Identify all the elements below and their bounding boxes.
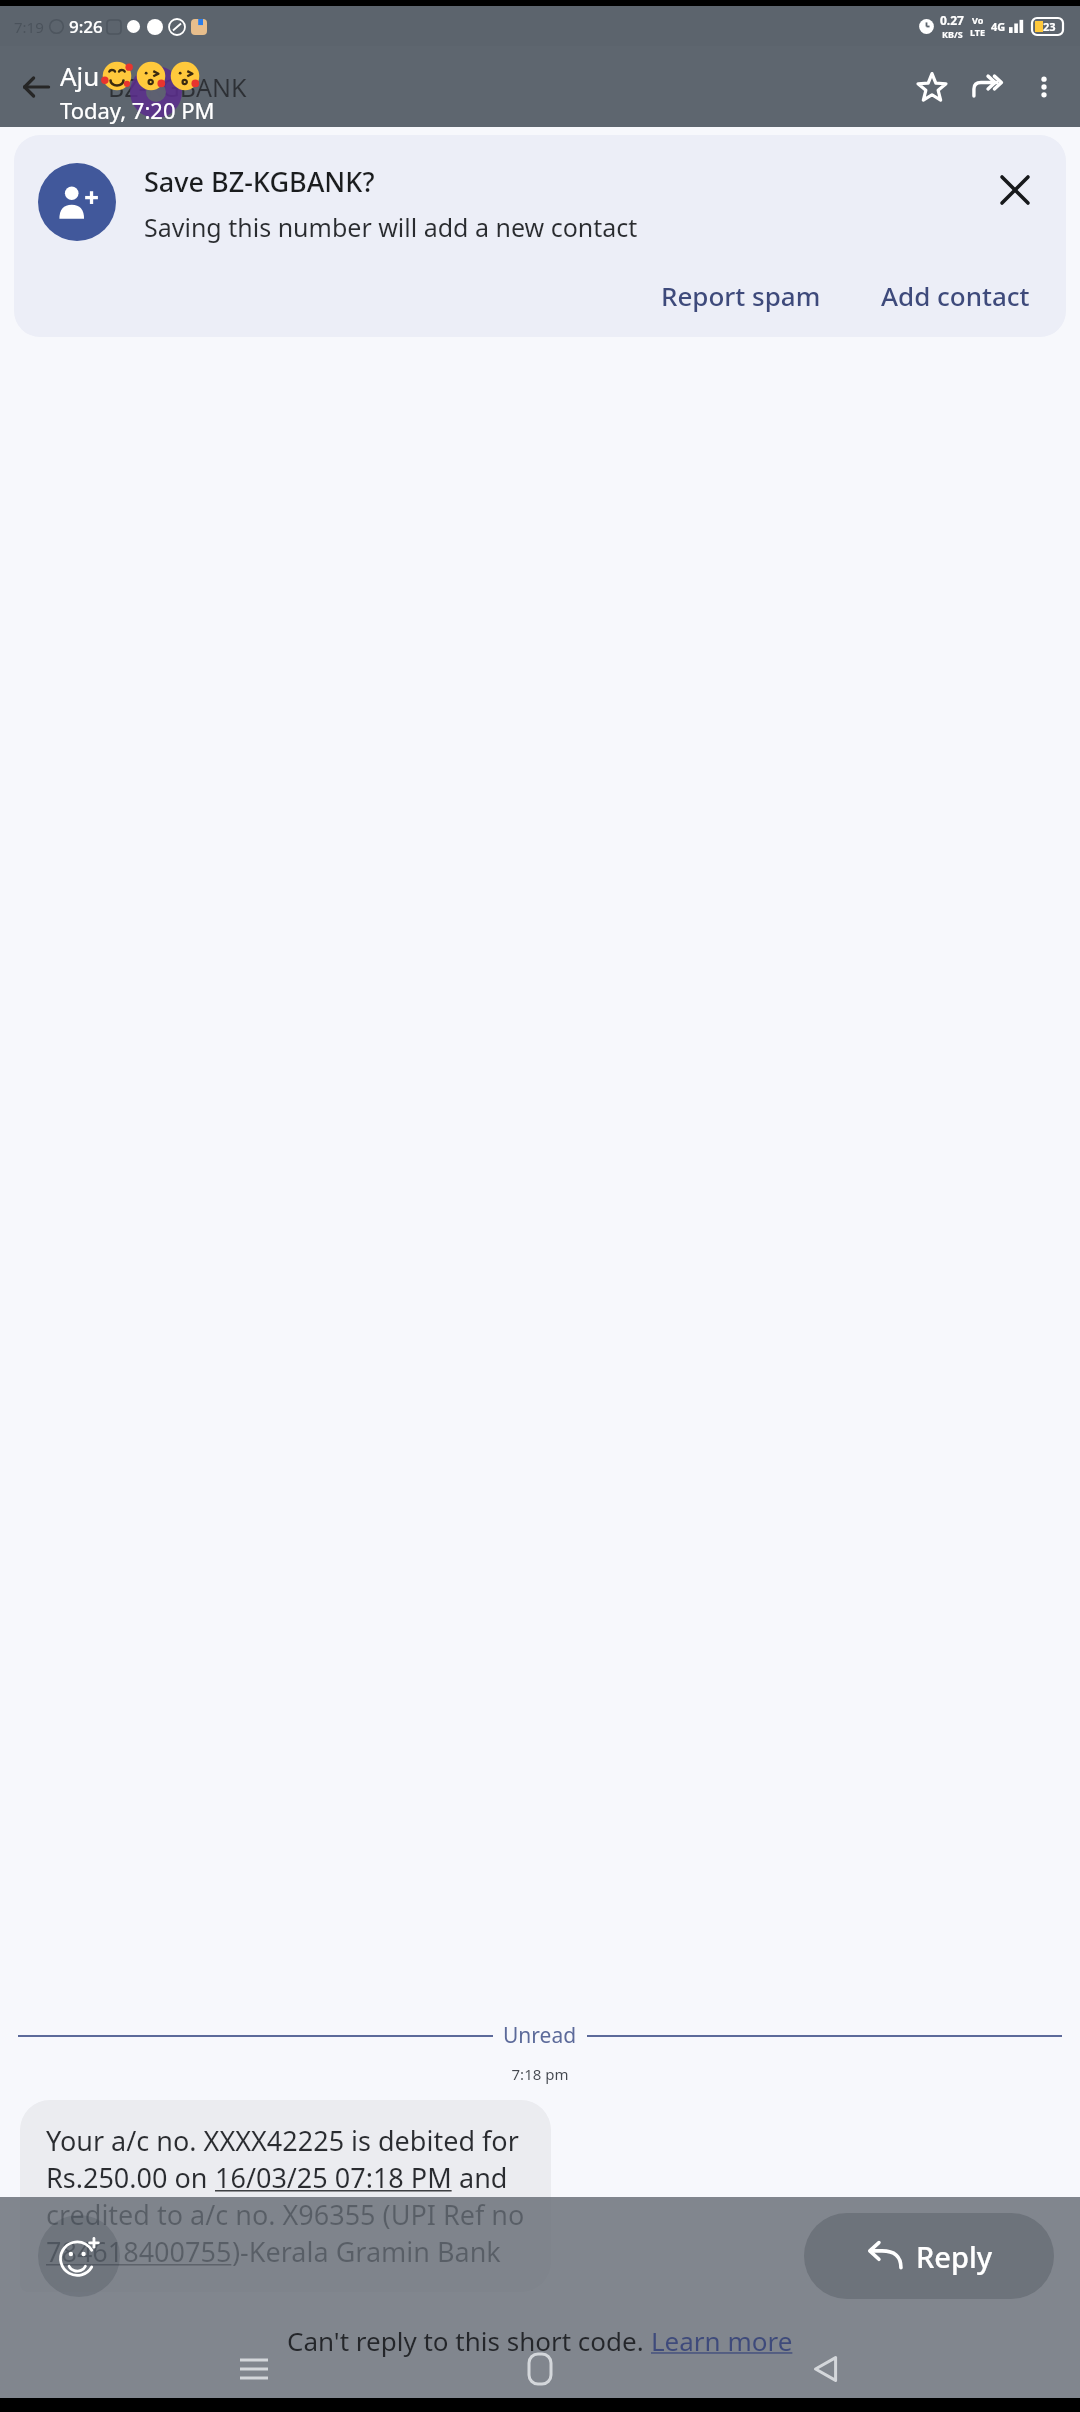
staticText: Unread bbox=[503, 2021, 577, 2050]
staticText: 16/03/25 07:18 PM bbox=[215, 2159, 452, 2196]
button[interactable]: Star bbox=[904, 59, 960, 115]
staticText: LTE bbox=[970, 26, 986, 38]
staticText: KB/S bbox=[942, 28, 963, 40]
staticText: Reply bbox=[916, 2237, 993, 2276]
button[interactable]: Learn more bbox=[651, 2323, 793, 2358]
button[interactable]: Recent apps bbox=[222, 2337, 286, 2401]
button[interactable]: Your a/c no. XXXX42225 is debited for bbox=[20, 2100, 551, 2292]
staticText: Saving this number will add a new contac… bbox=[144, 210, 638, 244]
staticText: 0.27 bbox=[940, 12, 964, 28]
staticText: Vo bbox=[972, 14, 984, 26]
button[interactable]: Save BZ-KGBANK? bbox=[14, 135, 1066, 337]
button[interactable]: Add contact bbox=[869, 272, 1042, 319]
button[interactable]: More options bbox=[1016, 59, 1072, 115]
staticText: Rs.250.00 on bbox=[46, 2159, 215, 2196]
staticText: BZ-KGBANK bbox=[108, 70, 247, 104]
staticText: 784618400755 bbox=[46, 2233, 232, 2270]
staticText: Your a/c no. XXXX42225 is debited for bbox=[46, 2122, 519, 2159]
staticText: 9:26 bbox=[69, 15, 103, 38]
button[interactable]: Add emoji reaction bbox=[38, 2215, 120, 2297]
button[interactable]: Dismiss bbox=[988, 163, 1042, 217]
staticText: credited to a/c no. X96355 (UPI Ref no bbox=[46, 2196, 525, 2233]
staticText: 7:19 bbox=[14, 17, 44, 37]
button[interactable]: Forward bbox=[960, 59, 1016, 115]
staticText: 23 bbox=[1043, 19, 1056, 34]
button[interactable]: Reply bbox=[804, 2213, 1054, 2299]
staticText: 4G bbox=[991, 19, 1006, 34]
staticText: Can't reply to this short code. bbox=[287, 2323, 651, 2358]
staticText: Aju bbox=[60, 58, 100, 93]
staticText: )-Kerala Gramin Bank bbox=[232, 2233, 501, 2270]
button[interactable]: Back bbox=[10, 61, 62, 113]
staticText: Add contact bbox=[881, 278, 1030, 313]
staticText: Learn more bbox=[651, 2323, 793, 2358]
staticText: Save BZ-KGBANK? bbox=[144, 163, 375, 200]
staticText: Today, 7:20 PM bbox=[60, 95, 215, 125]
button[interactable]: Back bbox=[794, 2337, 858, 2401]
staticText: and bbox=[452, 2159, 508, 2196]
button[interactable]: Report spam bbox=[649, 272, 833, 319]
staticText: Report spam bbox=[661, 278, 821, 313]
staticText: 7:18 pm bbox=[0, 2064, 1080, 2084]
button[interactable]: Home bbox=[508, 2337, 572, 2401]
